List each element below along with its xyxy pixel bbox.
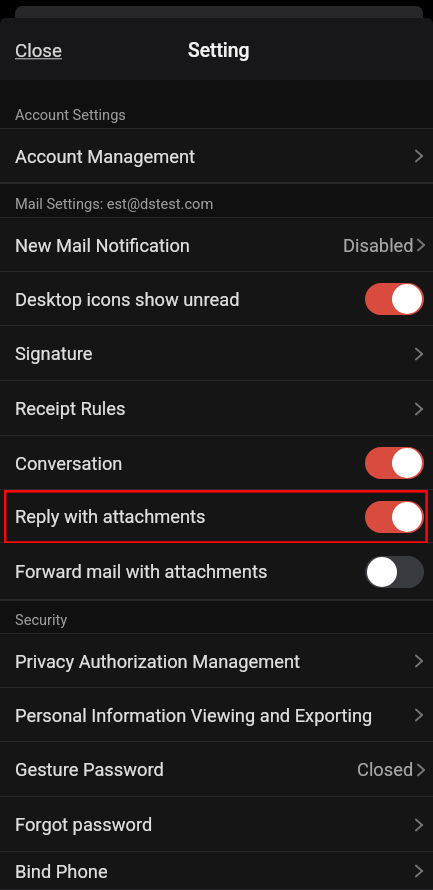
staticText: Reply with attachments — [15, 506, 206, 527]
staticText: Bind Phone — [15, 861, 108, 882]
staticText: Closed — [357, 759, 414, 780]
staticText: Forgot password — [15, 814, 153, 835]
staticText: Personal Information Viewing and Exporti… — [15, 705, 373, 726]
button[interactable]: New Mail Notification — [0, 218, 433, 272]
staticText: Setting — [188, 39, 250, 62]
button[interactable]: Personal Information Viewing and Exporti… — [0, 688, 433, 742]
button[interactable]: Forgot password — [0, 797, 433, 852]
staticText: New Mail Notification — [15, 235, 190, 256]
button[interactable]: Signature — [0, 326, 433, 381]
button[interactable]: Toggle on — [365, 501, 424, 533]
staticText: Forward mail with attachments — [15, 561, 268, 582]
staticText: Receipt Rules — [15, 398, 126, 419]
staticText: Conversation — [15, 453, 123, 474]
button[interactable]: Reply with attachments — [0, 490, 433, 543]
button[interactable]: Bind Phone — [0, 852, 433, 890]
staticText: Security — [15, 611, 68, 628]
staticText: Gesture Password — [15, 759, 164, 780]
button[interactable]: Toggle off — [365, 556, 424, 588]
staticText: Disabled — [343, 235, 414, 256]
button[interactable]: Account Management — [0, 129, 433, 183]
button[interactable]: Gesture Password — [0, 742, 433, 797]
staticText: Privacy Authorization Management — [15, 651, 301, 672]
staticText: Mail Settings: est@dstest.com — [15, 195, 214, 212]
staticText: Account Settings — [15, 106, 126, 123]
button[interactable]: Privacy Authorization Management — [0, 634, 433, 688]
button[interactable]: Forward mail with attachments — [0, 543, 433, 600]
button[interactable]: Receipt Rules — [0, 381, 433, 436]
staticText: Account Management — [15, 146, 196, 167]
button[interactable]: Toggle on — [365, 283, 424, 315]
staticText: Desktop icons show unread — [15, 289, 240, 310]
button[interactable]: Close — [0, 37, 62, 62]
button[interactable]: Desktop icons show unread — [0, 272, 433, 326]
staticText: Signature — [15, 343, 93, 364]
button[interactable]: Toggle on — [365, 447, 424, 479]
button[interactable]: Conversation — [0, 436, 433, 490]
